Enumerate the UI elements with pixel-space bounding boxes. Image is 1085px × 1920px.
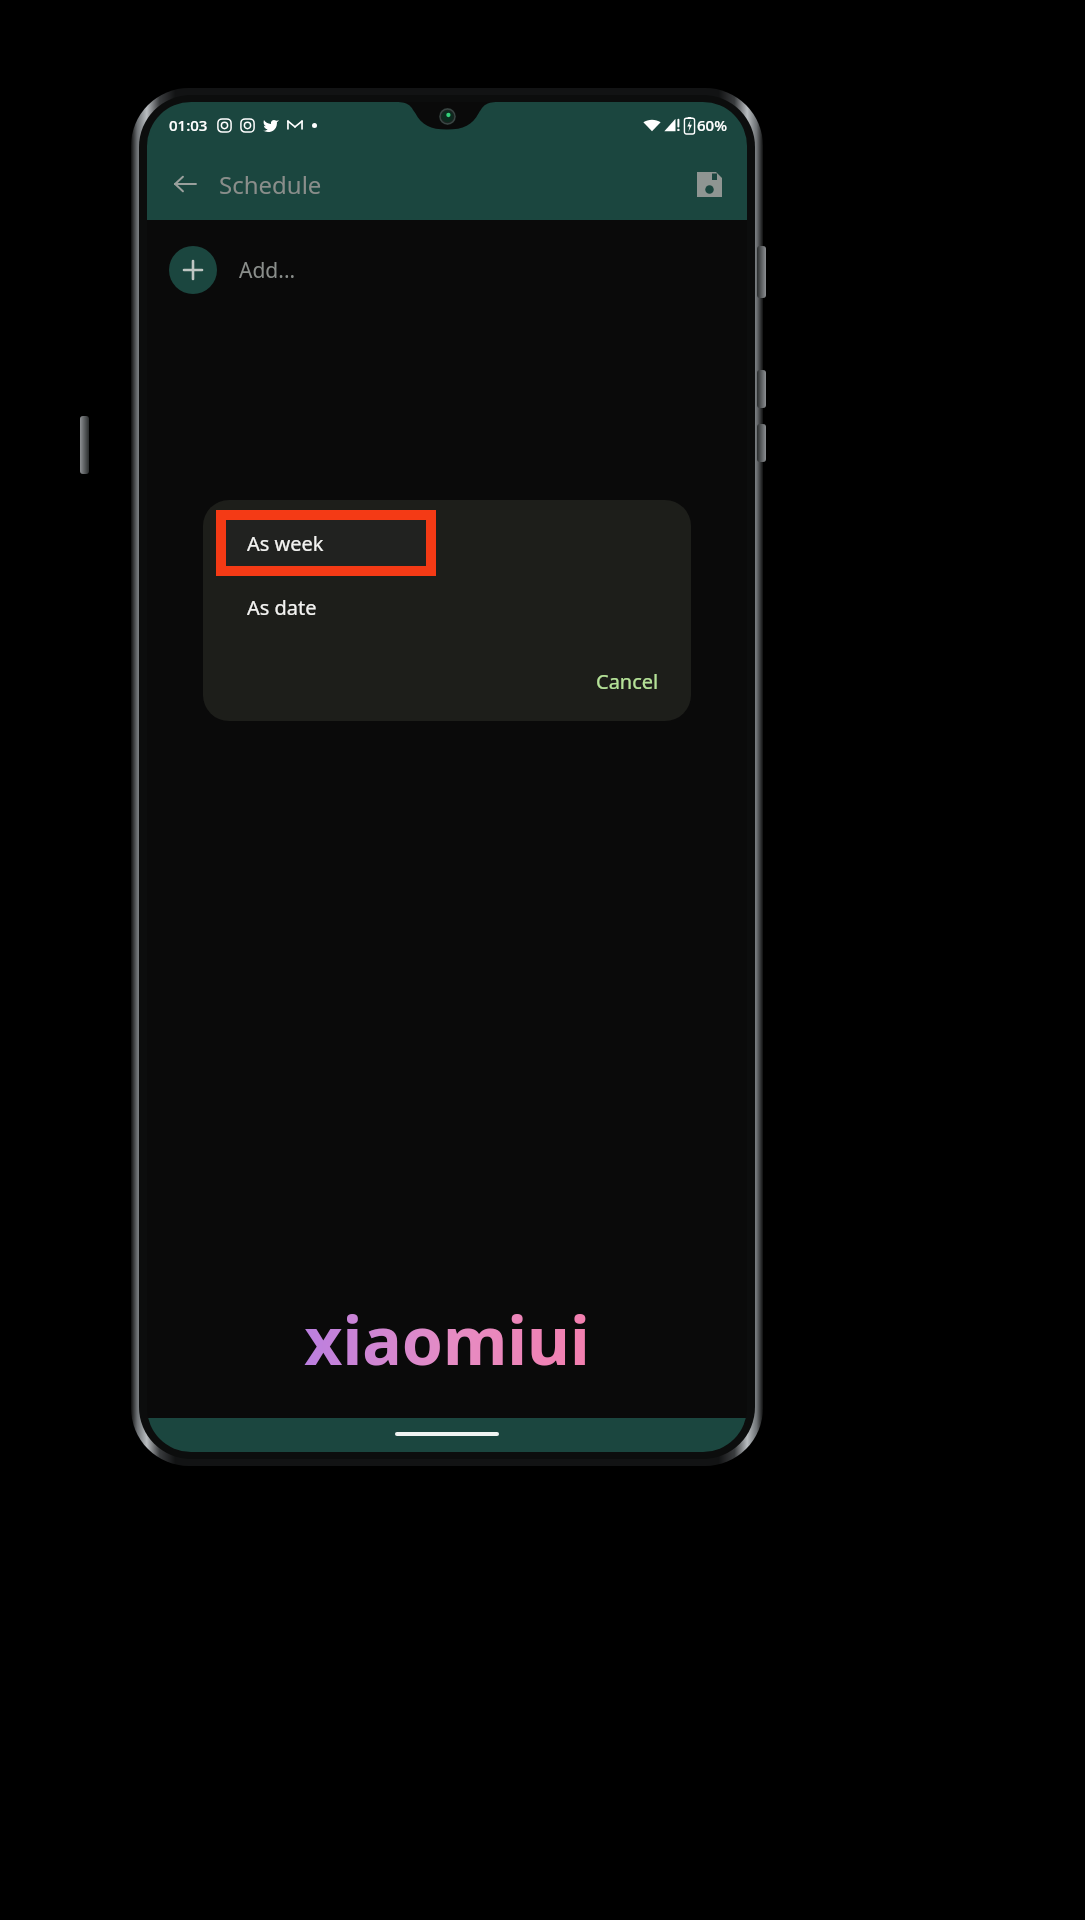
staticText: Cancel xyxy=(596,668,659,695)
staticText: 60% xyxy=(697,115,727,135)
button[interactable]: As date xyxy=(203,576,691,638)
button[interactable]: Cancel xyxy=(584,660,671,703)
staticText: As date xyxy=(247,594,317,621)
button[interactable]: As week xyxy=(226,520,426,566)
button[interactable]: Save xyxy=(685,160,733,208)
staticText: As week xyxy=(247,530,324,557)
button[interactable]: Back xyxy=(161,160,209,208)
staticText: 01:03 xyxy=(169,115,208,135)
staticText: Schedule xyxy=(219,168,322,201)
staticText: xiaomiui xyxy=(304,1294,590,1384)
staticText: Add... xyxy=(239,256,296,285)
button[interactable]: Add... xyxy=(147,234,747,306)
